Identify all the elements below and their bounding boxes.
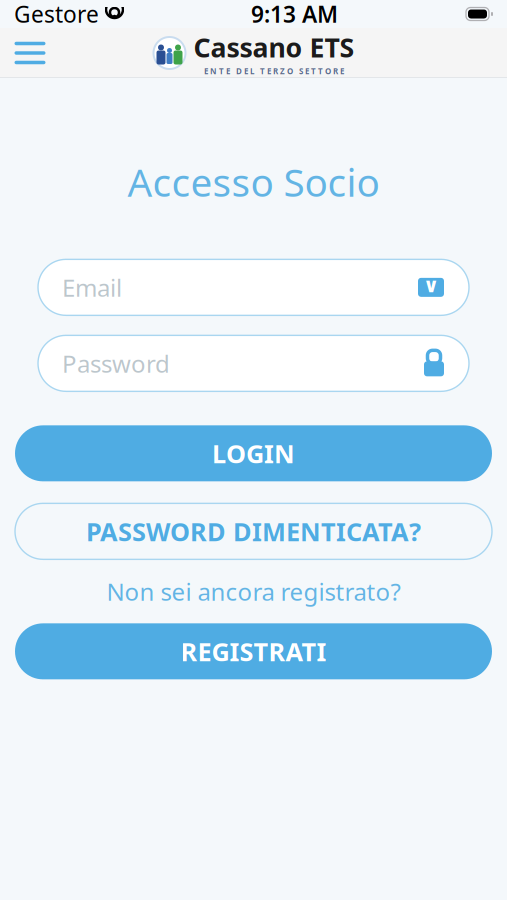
staticText: Cassano ETS — [193, 29, 354, 65]
button[interactable]: Email — [38, 259, 469, 315]
staticText: Non sei ancora registrato? — [106, 575, 400, 607]
staticText: Password — [62, 347, 170, 379]
button[interactable]: Password — [38, 335, 469, 391]
staticText: 9:13 AM — [251, 0, 338, 29]
staticText: PASSWORD DIMENTICATA? — [86, 514, 421, 548]
button[interactable]: Non sei ancora registrato? — [15, 573, 492, 609]
button[interactable]: Menu — [4, 31, 56, 75]
staticText: Accesso Socio — [127, 156, 379, 207]
staticText: REGISTRATI — [180, 634, 326, 668]
button[interactable]: REGISTRATI — [15, 623, 492, 679]
staticText: Email — [62, 271, 122, 303]
staticText: E N T E D E L T E R Z O S E T T O R E — [204, 66, 344, 76]
button[interactable]: PASSWORD DIMENTICATA? — [15, 503, 492, 559]
staticText: ∨ — [423, 274, 439, 297]
button[interactable]: LOGIN — [15, 425, 492, 481]
staticText: Gestore — [14, 0, 99, 29]
staticText: LOGIN — [212, 436, 295, 470]
